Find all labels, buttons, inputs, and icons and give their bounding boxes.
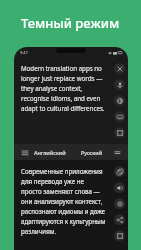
button[interactable]: Clear: [114, 63, 125, 74]
button[interactable]: Share: [114, 214, 125, 225]
staticText: Современные приложения для перевода уже …: [21, 167, 106, 236]
button[interactable]: Microphone: [114, 79, 125, 90]
staticText: Английский: [34, 149, 66, 156]
staticText: Русский: [81, 149, 103, 156]
button[interactable]: Английский: [29, 149, 71, 156]
staticText: 9:41: [20, 50, 28, 55]
button[interactable]: Keyboard: [114, 111, 125, 122]
button[interactable]: Listen: [114, 182, 125, 193]
button[interactable]: Swap languages: [113, 148, 122, 157]
button[interactable]: Menu: [20, 148, 29, 157]
button[interactable]: Русский: [71, 149, 113, 156]
button[interactable]: Expand: [114, 127, 125, 138]
staticText: Modern translation apps no longer just r…: [21, 64, 106, 113]
button[interactable]: Copy: [114, 166, 125, 177]
button[interactable]: Save: [114, 198, 125, 209]
button[interactable]: Fullscreen: [114, 230, 125, 241]
button[interactable]: Translate: [114, 95, 125, 106]
staticText: Темный режим: [21, 14, 120, 32]
